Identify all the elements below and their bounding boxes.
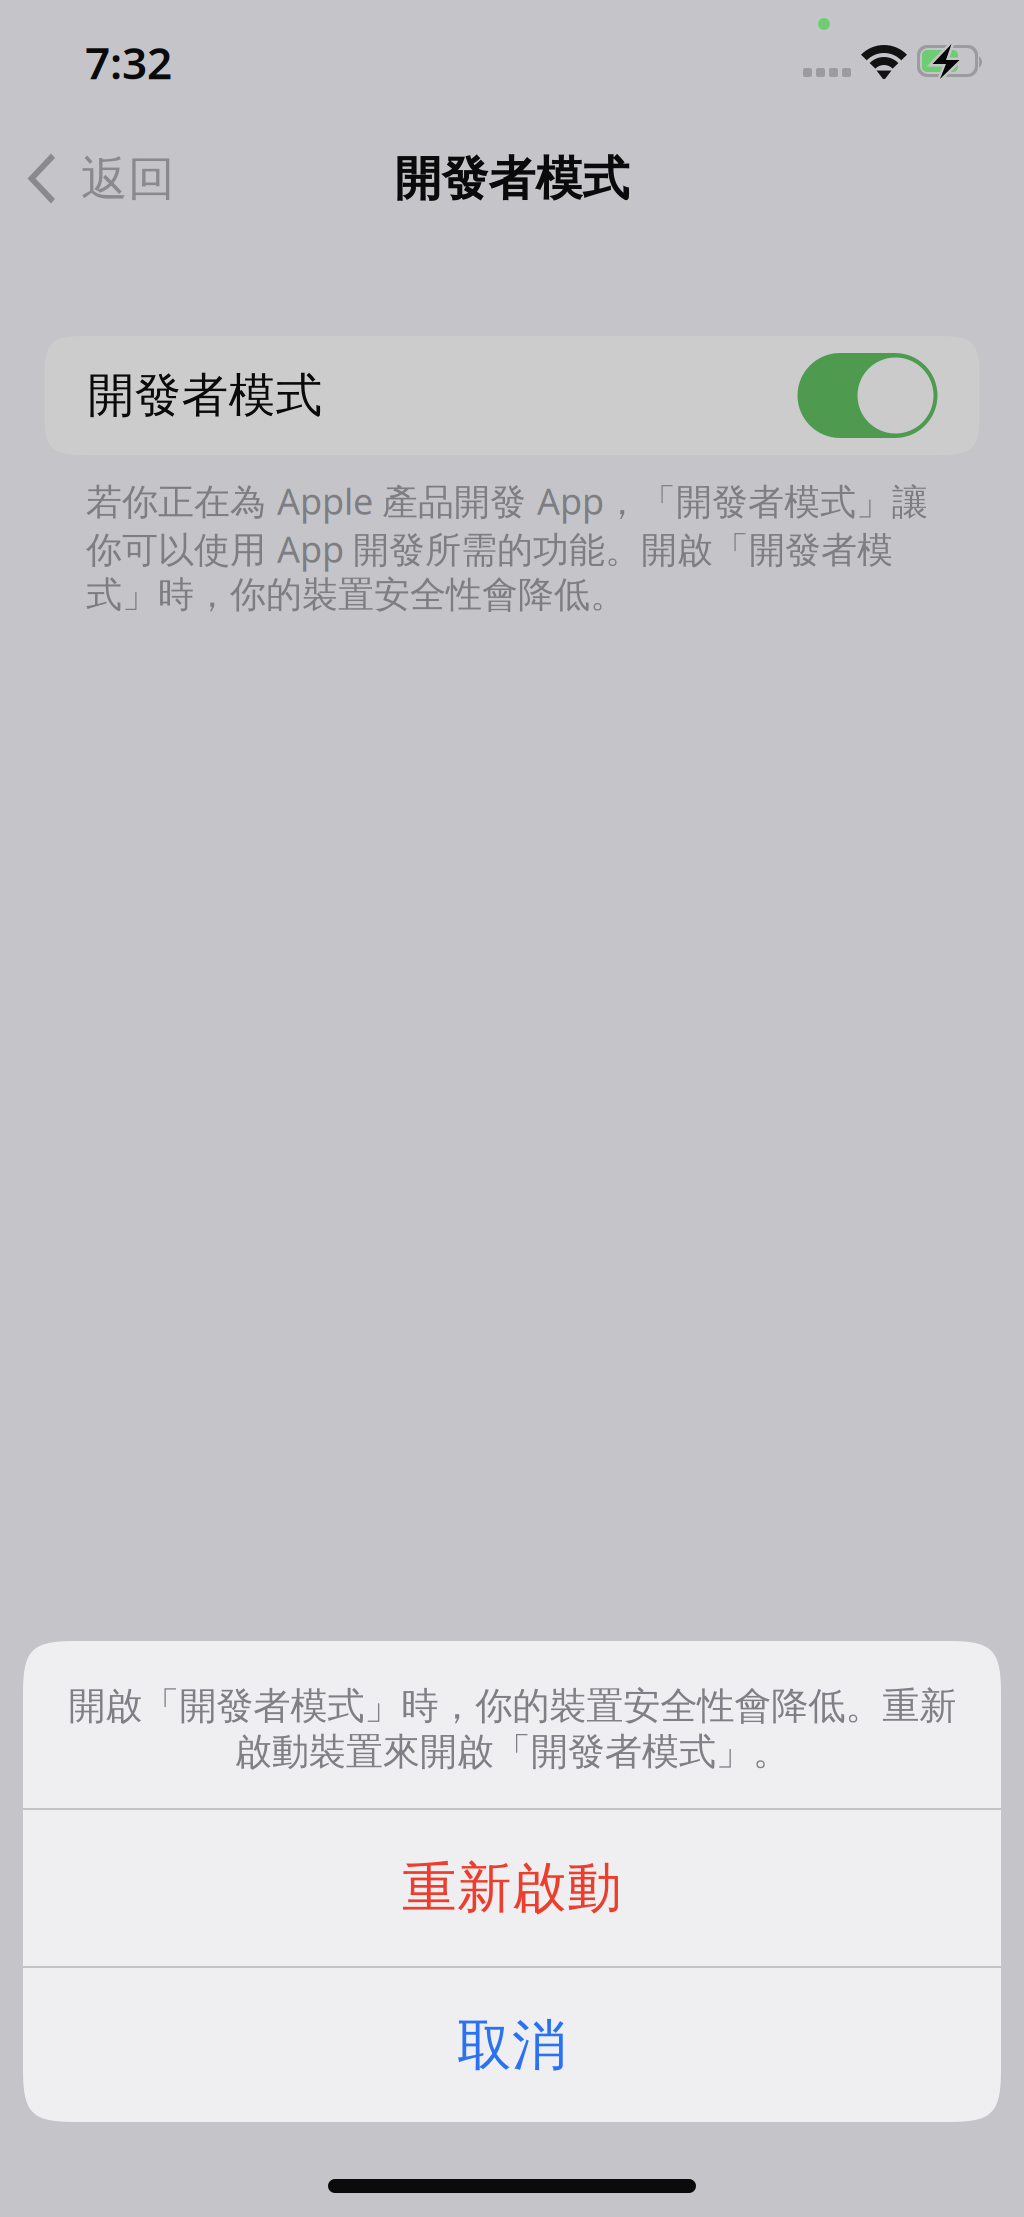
staticText: 取消: [457, 2012, 567, 2079]
button[interactable]: 取消: [23, 1968, 1001, 2123]
staticText: 開發者模式: [87, 367, 322, 424]
staticText: 返回: [81, 150, 175, 208]
button[interactable]: 返回: [0, 120, 195, 238]
button[interactable]: 開發者模式: [44, 336, 979, 455]
staticText: 若你正在為 Apple 產品開發 App，「開發者模式」讓你可以使用 App 開…: [86, 477, 928, 617]
staticText: 重新啟動: [402, 1854, 622, 1921]
staticText: 開發者模式: [394, 150, 629, 208]
button[interactable]: 重新啟動: [23, 1810, 1001, 1966]
staticText: 開啟「開發者模式」時，你的裝置安全性會降低。重新啟動裝置來開啟「開發者模式」。: [68, 1683, 956, 1775]
staticText: 7:32: [85, 33, 172, 91]
